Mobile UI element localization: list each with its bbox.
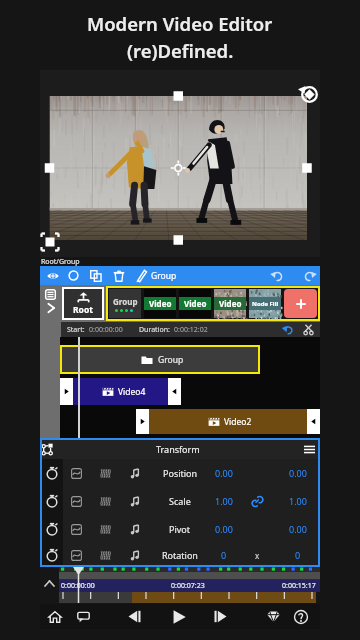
button[interactable]: Play [166, 604, 192, 629]
button[interactable]: Video [144, 289, 176, 318]
button[interactable]: Next frame [207, 604, 233, 629]
staticText: 0:00:00:00 [89, 325, 123, 335]
button[interactable]: Video2 [149, 409, 307, 434]
staticText: 0:00:15:17 [282, 581, 316, 591]
staticText: Rotation [162, 549, 198, 561]
button[interactable]: Undo [267, 266, 288, 285]
button[interactable]: Split clip [299, 322, 317, 337]
button[interactable]: Comments [70, 604, 96, 629]
staticText: Pivot [169, 523, 191, 535]
staticText: Transform [156, 443, 200, 455]
staticText: 0.00 [215, 467, 233, 479]
staticText: Video [149, 298, 172, 309]
staticText: Duration: [139, 325, 170, 335]
staticText: (re)Defined. [127, 38, 234, 63]
button[interactable]: Trim start [136, 409, 149, 434]
button[interactable]: Reset transform [279, 322, 297, 337]
staticText: Video4 [118, 386, 146, 398]
staticText: 0 [295, 549, 301, 561]
button[interactable]: Group [60, 345, 260, 374]
button[interactable]: Trim start [60, 378, 73, 405]
staticText: 1.00 [289, 495, 307, 507]
button[interactable]: Trim end [307, 409, 320, 434]
button[interactable]: Delete [108, 266, 129, 285]
staticText: 0:00:00:00 [61, 581, 95, 591]
staticText: 0 [221, 549, 227, 561]
button[interactable]: Premium [260, 604, 286, 629]
staticText: Modern Video Editor [87, 11, 273, 36]
button[interactable]: Add clip [284, 289, 317, 318]
button[interactable]: Home [42, 604, 68, 629]
button[interactable]: Pivot [40, 515, 320, 543]
button[interactable]: Video [214, 289, 246, 318]
staticText: 0.00 [289, 467, 307, 479]
staticText: Position [163, 467, 198, 479]
button[interactable]: Help [288, 604, 314, 629]
button[interactable]: Group [109, 289, 141, 318]
staticText: Node Fill [252, 300, 279, 308]
staticText: Group [158, 354, 184, 366]
staticText: Video2 [224, 416, 252, 428]
staticText: x [255, 550, 260, 561]
button[interactable]: Node Fill [249, 289, 281, 318]
staticText: 1.00 [215, 495, 233, 507]
button[interactable]: Previous frame [121, 604, 147, 629]
button[interactable]: Video [179, 289, 211, 318]
staticText: Root [73, 304, 93, 316]
button[interactable]: Rotation [40, 543, 320, 567]
staticText: Root/Group [41, 257, 80, 266]
button[interactable]: Duplicate [85, 266, 106, 285]
button[interactable]: Trim end [168, 378, 181, 405]
button[interactable]: Scale [40, 487, 320, 515]
button[interactable]: Layers [40, 285, 61, 322]
staticText: 0.00 [215, 523, 233, 535]
staticText: Scale [169, 495, 191, 507]
staticText: Group [113, 296, 138, 307]
button[interactable]: Group [106, 286, 320, 321]
button[interactable]: Visibility [42, 266, 63, 285]
staticText: 0:00:12:02 [174, 325, 208, 335]
button[interactable]: Root [62, 287, 104, 320]
button[interactable]: Menu [301, 441, 317, 457]
staticText: Group [151, 270, 177, 282]
staticText: 0.00 [289, 523, 307, 535]
button[interactable]: Video4 [73, 378, 168, 405]
button[interactable]: Position [40, 459, 320, 487]
staticText: 0:00:07:23 [171, 581, 205, 591]
button[interactable]: Redo [299, 266, 320, 285]
button[interactable]: Video preview [40, 70, 320, 257]
staticText: Video [184, 298, 207, 309]
button[interactable]: Group [149, 266, 185, 285]
staticText: Video [219, 298, 242, 309]
button[interactable]: Rename [130, 266, 151, 285]
button[interactable]: Select [63, 266, 84, 285]
staticText: Start: [67, 325, 85, 335]
